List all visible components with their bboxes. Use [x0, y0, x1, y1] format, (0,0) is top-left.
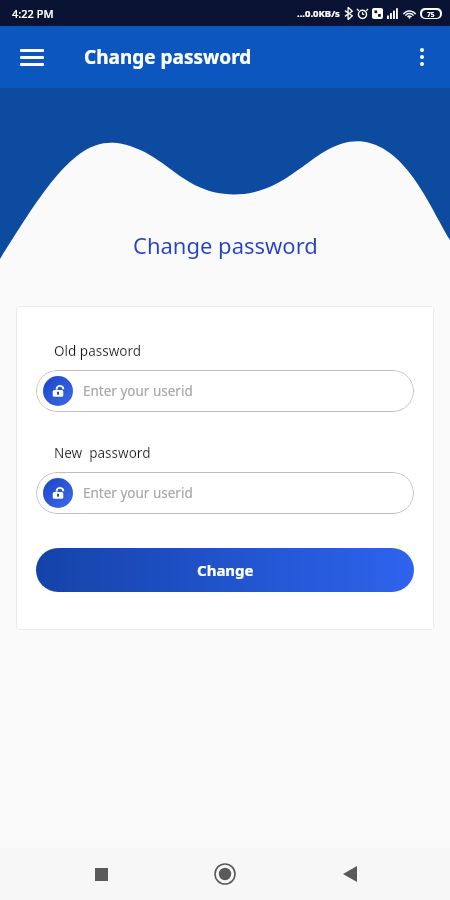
button[interactable]: Open navigation menu	[8, 33, 56, 81]
staticText: Enter your userid	[83, 484, 193, 502]
button[interactable]: More options	[400, 35, 444, 79]
staticText: New password	[54, 444, 151, 462]
button[interactable]: Home	[201, 850, 249, 898]
staticText: ...0.0KB/s	[297, 7, 340, 20]
button[interactable]: Change	[36, 548, 414, 592]
button[interactable]: Enter your userid	[36, 370, 414, 412]
button[interactable]: Recent apps	[77, 850, 125, 898]
staticText: Enter your userid	[83, 382, 193, 400]
button[interactable]: Back	[326, 850, 374, 898]
staticText: Change password	[133, 230, 318, 260]
staticText: 4:22 PM	[12, 6, 54, 21]
staticText: Old password	[54, 342, 142, 360]
staticText: 75	[427, 10, 435, 18]
staticText: Change	[197, 560, 254, 580]
button[interactable]: Enter your userid	[36, 472, 414, 514]
staticText: Change password	[84, 44, 252, 70]
